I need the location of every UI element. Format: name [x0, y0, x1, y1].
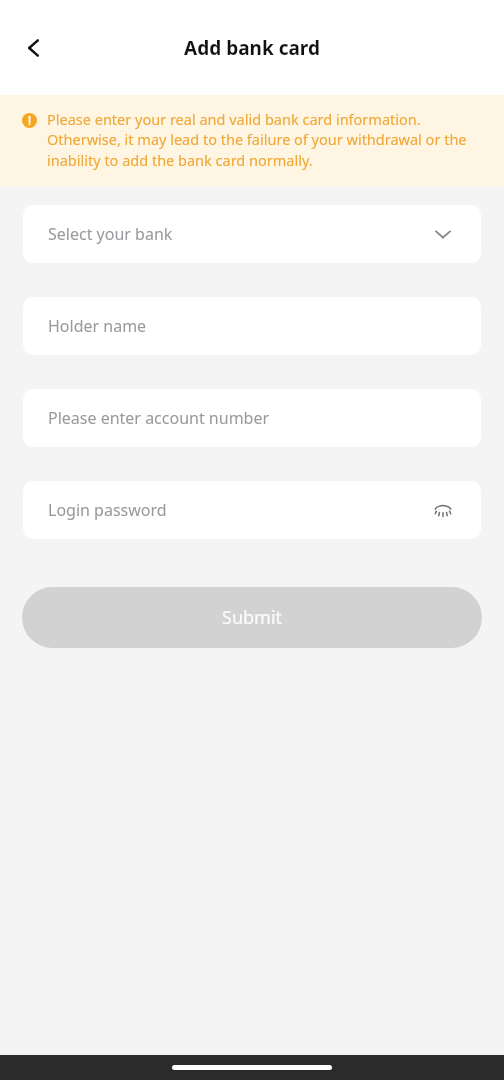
button[interactable]: Holder name: [23, 297, 481, 355]
button[interactable]: Login password: [23, 481, 481, 539]
staticText: Please enter your real and valid bank ca…: [47, 109, 482, 171]
other: Show password: [430, 497, 456, 523]
staticText: Add bank card: [184, 35, 320, 61]
button[interactable]: Back: [10, 24, 58, 72]
button[interactable]: Please enter account number: [23, 389, 481, 447]
staticText: Holder name: [48, 315, 456, 337]
button[interactable]: Select your bank: [23, 205, 481, 263]
staticText: Please enter account number: [48, 407, 456, 429]
staticText: Submit: [222, 605, 283, 630]
button[interactable]: Submit: [22, 587, 482, 648]
other: Select your bank: [430, 221, 456, 247]
staticText: Select your bank: [48, 223, 430, 245]
staticText: Login password: [48, 499, 430, 521]
